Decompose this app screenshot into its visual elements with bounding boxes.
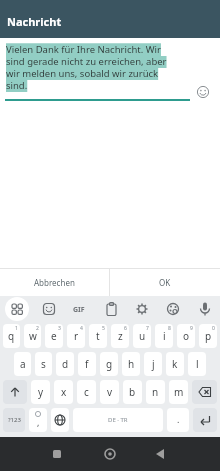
button[interactable] (0, 437, 74, 471)
button[interactable]: f (78, 352, 96, 376)
staticText: 8 (168, 325, 171, 332)
staticText: t (96, 329, 100, 343)
button[interactable]: a (14, 352, 31, 376)
button[interactable]: l (188, 352, 206, 376)
staticText: a (20, 357, 26, 371)
staticText: l (196, 357, 199, 371)
staticText: u (139, 329, 146, 343)
staticText: b (129, 385, 136, 399)
staticText: m (174, 385, 184, 399)
staticText: y (38, 385, 44, 399)
staticText: h (128, 357, 135, 371)
staticText: o (183, 329, 190, 343)
button[interactable] (196, 85, 210, 99)
button[interactable]: e (45, 324, 63, 348)
button[interactable]: y (31, 380, 50, 404)
staticText: q (8, 329, 15, 343)
staticText: d (62, 357, 69, 371)
button[interactable]: j (144, 352, 162, 376)
staticText: f (85, 357, 89, 371)
button[interactable] (74, 437, 147, 471)
button[interactable]: g (100, 352, 118, 376)
button[interactable]: , (29, 408, 47, 432)
staticText: c (84, 385, 89, 399)
staticText: 7 (146, 325, 149, 332)
button[interactable]: q (3, 324, 20, 348)
staticText: ?123 (8, 416, 21, 424)
staticText: v (107, 385, 113, 399)
button[interactable] (3, 380, 27, 404)
button[interactable]: b (123, 380, 142, 404)
staticText: OK (159, 277, 171, 288)
button[interactable] (192, 380, 217, 404)
staticText: n (152, 385, 159, 399)
button[interactable]: m (169, 380, 188, 404)
button[interactable]: o (177, 324, 195, 348)
button[interactable]: n (146, 380, 165, 404)
button[interactable]: GIF (73, 305, 85, 315)
staticText: 9 (190, 325, 193, 332)
staticText: , (37, 416, 40, 428)
staticText: g (106, 357, 113, 371)
button[interactable]: p (199, 324, 217, 348)
staticText: 6 (124, 325, 127, 332)
button[interactable] (51, 408, 69, 432)
button[interactable]: h (122, 352, 140, 376)
button[interactable]: r (67, 324, 85, 348)
staticText: i (163, 329, 166, 343)
button[interactable] (147, 437, 220, 471)
staticText: 4 (80, 325, 83, 332)
button[interactable]: i (155, 324, 173, 348)
staticText: . (177, 413, 180, 425)
staticText: Vielen Dank für Ihre Nachricht. Wir sind… (6, 43, 167, 92)
staticText: 3 (58, 325, 61, 332)
staticText: Abbrechen (34, 277, 75, 288)
button[interactable]: c (77, 380, 96, 404)
staticText: DE · TR (108, 416, 128, 424)
button[interactable] (193, 408, 217, 432)
button[interactable]: ?123 (3, 408, 25, 432)
button[interactable]: OK (110, 269, 220, 296)
staticText: r (74, 329, 79, 343)
button[interactable]: u (133, 324, 151, 348)
staticText: p (205, 329, 212, 343)
staticText: e (51, 329, 57, 343)
button[interactable]: d (56, 352, 74, 376)
staticText: j (152, 357, 155, 371)
button[interactable]: k (166, 352, 184, 376)
staticText: x (61, 385, 67, 399)
staticText: w (29, 329, 37, 343)
button[interactable]: w (24, 324, 41, 348)
staticText: k (172, 357, 178, 371)
button[interactable]: z (111, 324, 129, 348)
staticText: s (41, 357, 46, 371)
button[interactable]: Abbrechen (0, 269, 109, 296)
button[interactable]: t (89, 324, 107, 348)
staticText: 5 (102, 325, 105, 332)
staticText: 1 (15, 325, 18, 332)
button[interactable]: x (54, 380, 73, 404)
staticText: Nachricht (7, 14, 62, 29)
button[interactable]: DE · TR (73, 408, 163, 432)
button[interactable]: . (167, 408, 189, 432)
button[interactable]: s (35, 352, 52, 376)
staticText: 0 (212, 325, 215, 332)
staticText: 2 (36, 325, 39, 332)
button[interactable]: v (100, 380, 119, 404)
staticText: z (118, 329, 123, 343)
